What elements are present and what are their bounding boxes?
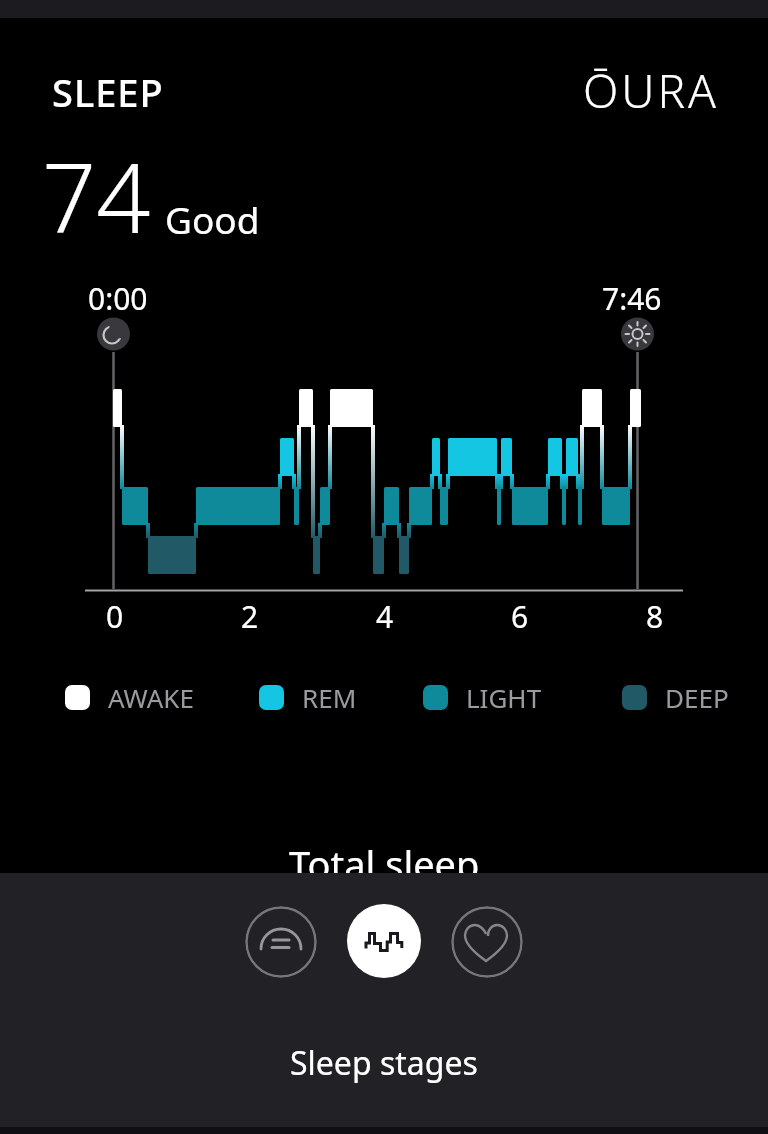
staticText: 0:00 (88, 278, 148, 319)
staticText: SLEEP (52, 66, 164, 118)
button[interactable] (347, 904, 421, 978)
button[interactable] (451, 906, 523, 978)
staticText: AWAKE (108, 680, 194, 715)
staticText: 8 (646, 596, 664, 637)
staticText: LIGHT (466, 680, 542, 715)
staticText: 6 (511, 596, 529, 637)
staticText: REM (302, 680, 357, 715)
staticText: 74 (42, 131, 151, 260)
staticText: Good (165, 194, 260, 244)
staticText: 0 (106, 596, 124, 637)
staticText: DEEP (665, 680, 729, 715)
staticText: 4 (376, 596, 394, 637)
staticText: 2 (241, 596, 259, 637)
staticText: Sleep stages (290, 1041, 478, 1085)
button[interactable] (245, 906, 317, 978)
staticText: 7:46 (602, 278, 662, 319)
staticText: ŌURA (583, 59, 719, 122)
staticText: Total sleep (289, 838, 480, 890)
